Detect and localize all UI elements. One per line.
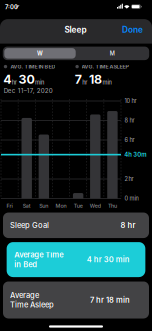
staticText: 0 min: [124, 195, 138, 202]
staticText: 10 hr: [124, 98, 136, 104]
staticText: Time Asleep: [10, 300, 54, 309]
staticText: AVG. TIME ASLEEP: [82, 63, 129, 70]
staticText: hr: [12, 79, 17, 86]
staticText: 4 hr 30 min: [87, 255, 130, 264]
staticText: Average Time: [14, 250, 63, 259]
button[interactable]: Average Time: [7, 242, 145, 277]
staticText: 8 hr: [124, 117, 134, 124]
staticText: 8 hr: [120, 221, 135, 230]
staticText: 7:00: [5, 4, 18, 11]
staticText: 4h 30m: [124, 151, 146, 158]
staticText: 18: [89, 72, 102, 87]
staticText: 2 hr: [124, 176, 133, 182]
button[interactable]: Sleep Goal: [3, 213, 149, 238]
staticText: Fri: [7, 203, 13, 209]
staticText: Done: [122, 25, 143, 35]
staticText: Wed: [90, 203, 101, 209]
staticText: Tue: [74, 203, 83, 209]
staticText: M: [110, 50, 115, 57]
staticText: AVG. TIME IN BED: [10, 63, 55, 70]
staticText: min: [102, 79, 111, 86]
staticText: 4: [3, 72, 11, 87]
staticText: Mon: [55, 203, 66, 209]
staticText: 30: [18, 72, 34, 87]
staticText: 6 hr: [124, 137, 134, 143]
staticText: Sun: [39, 203, 48, 209]
button[interactable]: M: [77, 48, 148, 59]
staticText: 7: [75, 72, 82, 87]
staticText: W: [37, 50, 43, 57]
staticText: Sat: [23, 203, 31, 209]
staticText: 7 hr 18 min: [90, 295, 130, 305]
staticText: in Bed: [14, 260, 37, 269]
button[interactable]: W: [4, 48, 76, 59]
button[interactable]: Average: [3, 281, 149, 318]
staticText: min: [35, 79, 44, 86]
staticText: Average: [10, 291, 39, 300]
staticText: Sleep Goal: [10, 221, 49, 230]
button[interactable]: Done: [119, 23, 147, 37]
staticText: Thu: [108, 203, 117, 209]
staticText: Dec 11–17, 2020: [4, 87, 53, 94]
staticText: hr: [82, 79, 87, 86]
staticText: Sleep: [65, 25, 87, 35]
